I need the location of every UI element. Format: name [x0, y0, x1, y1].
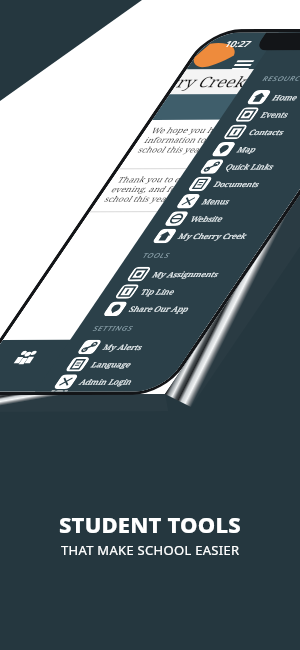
staticText: SETTINGS: [89, 306, 139, 349]
staticText: Share Our App: [124, 278, 195, 340]
staticText: THAT MAKE SCHOOL EASIER: [61, 541, 240, 559]
button[interactable]: Map: [205, 92, 300, 206]
button[interactable]: Tip Line: [108, 234, 241, 349]
staticText: TOOLS: [138, 239, 175, 271]
button[interactable]: Admin Login: [47, 324, 180, 439]
staticText: My Cherry Creek: [173, 202, 253, 270]
button[interactable]: Contacts: [217, 74, 300, 189]
staticText: My Assignments: [147, 241, 224, 307]
staticText: About the Developer: [73, 355, 157, 427]
button[interactable]: Menus: [170, 144, 300, 258]
staticText: Home: [268, 82, 300, 113]
staticText: Website: [185, 200, 229, 237]
staticText: General: [255, 194, 285, 220]
staticText: Contacts: [244, 112, 290, 152]
staticText: CHERRY CREEK SCHOOL DISTRICT: [238, 83, 294, 132]
button[interactable]: Events: [228, 57, 300, 172]
button[interactable]: Open navigation menu: [223, 48, 262, 82]
staticText: Documents: [209, 160, 266, 209]
staticText: RESOURCES: [259, 53, 300, 103]
staticText: 10:27: [219, 27, 257, 60]
button[interactable]: Language: [59, 307, 192, 421]
button[interactable]: Home: [240, 40, 300, 154]
staticText: Tip Line: [136, 272, 181, 311]
button[interactable]: My Alerts: [71, 289, 203, 404]
staticText: Quick Links: [220, 141, 280, 192]
button[interactable]: About the Developer: [50, 341, 164, 440]
button[interactable]: Community: [8, 342, 44, 372]
staticText: Menus: [197, 185, 236, 218]
staticText: STUDENT TOOLS: [59, 509, 241, 539]
button[interactable]: Documents: [181, 126, 300, 241]
staticText: My Alerts: [98, 325, 149, 369]
staticText: Events: [256, 98, 294, 131]
staticText: Cherry Creek School: [165, 3, 300, 161]
staticText: Language: [86, 343, 137, 386]
button[interactable]: Share Our App: [97, 251, 229, 366]
staticText: Thank you to everyone for this evening, …: [94, 111, 275, 267]
staticText: We hope you have all the information to …: [128, 67, 297, 212]
button[interactable]: Website: [158, 161, 291, 276]
staticText: Map: [232, 137, 262, 162]
staticText: Admin Login: [74, 355, 138, 409]
button[interactable]: My Cherry Creek: [146, 178, 279, 293]
button[interactable]: Quick Links: [193, 109, 300, 224]
button[interactable]: My Assignments: [120, 217, 253, 331]
